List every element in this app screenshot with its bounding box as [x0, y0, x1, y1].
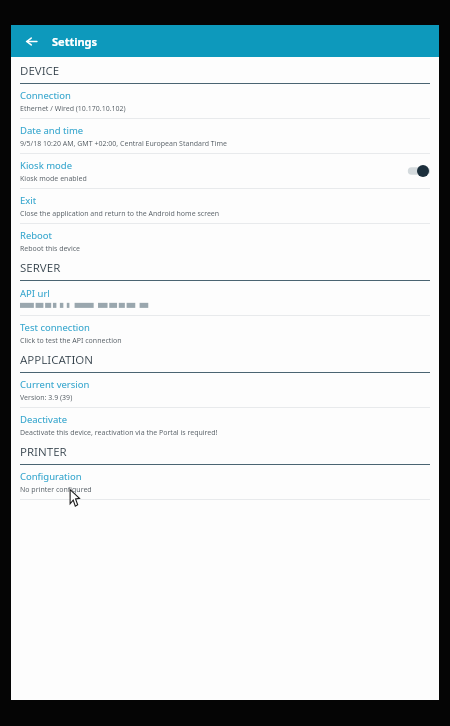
staticText: Settings — [52, 34, 98, 49]
staticText: Reboot this device — [20, 244, 81, 254]
staticText: Reboot — [20, 229, 53, 242]
staticText: No printer configured — [20, 485, 92, 495]
staticText: Deactivate this device, reactivation via… — [20, 428, 218, 438]
staticText: Current version — [20, 378, 90, 391]
button[interactable]: Exit — [11, 189, 439, 223]
staticText: Exit — [20, 194, 37, 207]
button[interactable]: Reboot — [11, 224, 439, 258]
button[interactable]: Current version — [11, 373, 439, 407]
staticText: API url — [20, 287, 50, 300]
staticText: 9/5/18 10:20 AM, GMT +02:00, Central Eur… — [20, 139, 228, 149]
staticText: PRINTER — [20, 444, 67, 460]
staticText: Configuration — [20, 470, 82, 483]
staticText: Close the application and return to the … — [20, 209, 220, 219]
staticText: Ethernet / Wired (10.170.10.102) — [20, 104, 126, 114]
staticText: Deactivate — [20, 413, 68, 426]
button[interactable]: Connection — [11, 84, 439, 118]
button[interactable]: Test connection — [11, 316, 439, 350]
staticText: Connection — [20, 89, 71, 102]
staticText: Kiosk mode enabled — [20, 174, 87, 184]
button[interactable]: Kiosk mode toggle — [400, 161, 430, 181]
staticText: Test connection — [20, 321, 90, 334]
staticText: Version: 3.9 (39) — [20, 393, 73, 403]
staticText: SERVER — [20, 260, 61, 276]
staticText: Click to test the API connection — [20, 336, 122, 346]
staticText: DEVICE — [20, 63, 60, 79]
button[interactable]: Back — [20, 30, 42, 52]
staticText: APPLICATION — [20, 352, 94, 368]
button[interactable]: Deactivate — [11, 408, 439, 442]
button[interactable]: Kiosk mode — [11, 154, 439, 188]
button[interactable]: Configuration — [11, 465, 439, 499]
staticText: Date and time — [20, 124, 84, 137]
button[interactable]: API url — [11, 281, 439, 315]
button[interactable]: Date and time — [11, 119, 439, 153]
staticText: Kiosk mode — [20, 159, 73, 172]
